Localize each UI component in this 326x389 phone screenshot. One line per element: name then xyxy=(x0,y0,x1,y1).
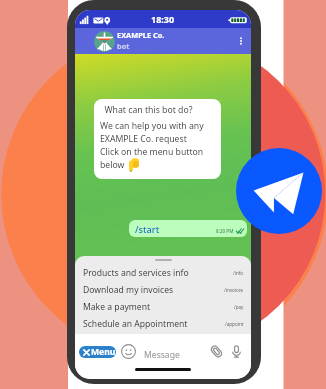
staticText: EXAMPLE Co. xyxy=(117,30,165,40)
button[interactable]: Menu xyxy=(79,346,116,358)
button[interactable]: Download my invoices xyxy=(75,281,251,298)
staticText: below xyxy=(100,159,125,171)
staticText: /invoices xyxy=(224,287,244,293)
button[interactable]: Emoji xyxy=(121,344,136,359)
button[interactable]: More options xyxy=(234,34,248,48)
staticText: Menu xyxy=(91,346,116,358)
staticText: EXAMPLE Co. request xyxy=(100,133,187,145)
staticText: Download my invoices xyxy=(83,284,174,296)
staticText: Message xyxy=(144,349,180,361)
staticText: /info xyxy=(233,270,244,276)
button[interactable]: Products and services info xyxy=(75,264,251,281)
button[interactable]: Voice message xyxy=(229,344,244,359)
staticText: 18:30 xyxy=(151,13,175,25)
staticText: 8:20 PM xyxy=(216,228,234,234)
staticText: We can help you with any xyxy=(100,120,204,132)
staticText: Click on the menu button xyxy=(100,146,204,158)
staticText: What can this bot do? xyxy=(100,104,193,116)
staticText: /pay xyxy=(234,304,244,310)
staticText: bot xyxy=(117,41,130,51)
button[interactable]: Attach file xyxy=(209,344,224,359)
staticText: /start xyxy=(135,223,160,236)
button[interactable]: Schedule an Appointment xyxy=(75,315,251,332)
button[interactable]: Make a payment xyxy=(75,298,251,315)
staticText: Schedule an Appointment xyxy=(83,318,188,330)
staticText: Products and services info xyxy=(83,267,189,279)
staticText: Make a payment xyxy=(83,301,151,313)
staticText: /appoint xyxy=(225,321,244,327)
button[interactable]: Telegram xyxy=(236,148,322,234)
